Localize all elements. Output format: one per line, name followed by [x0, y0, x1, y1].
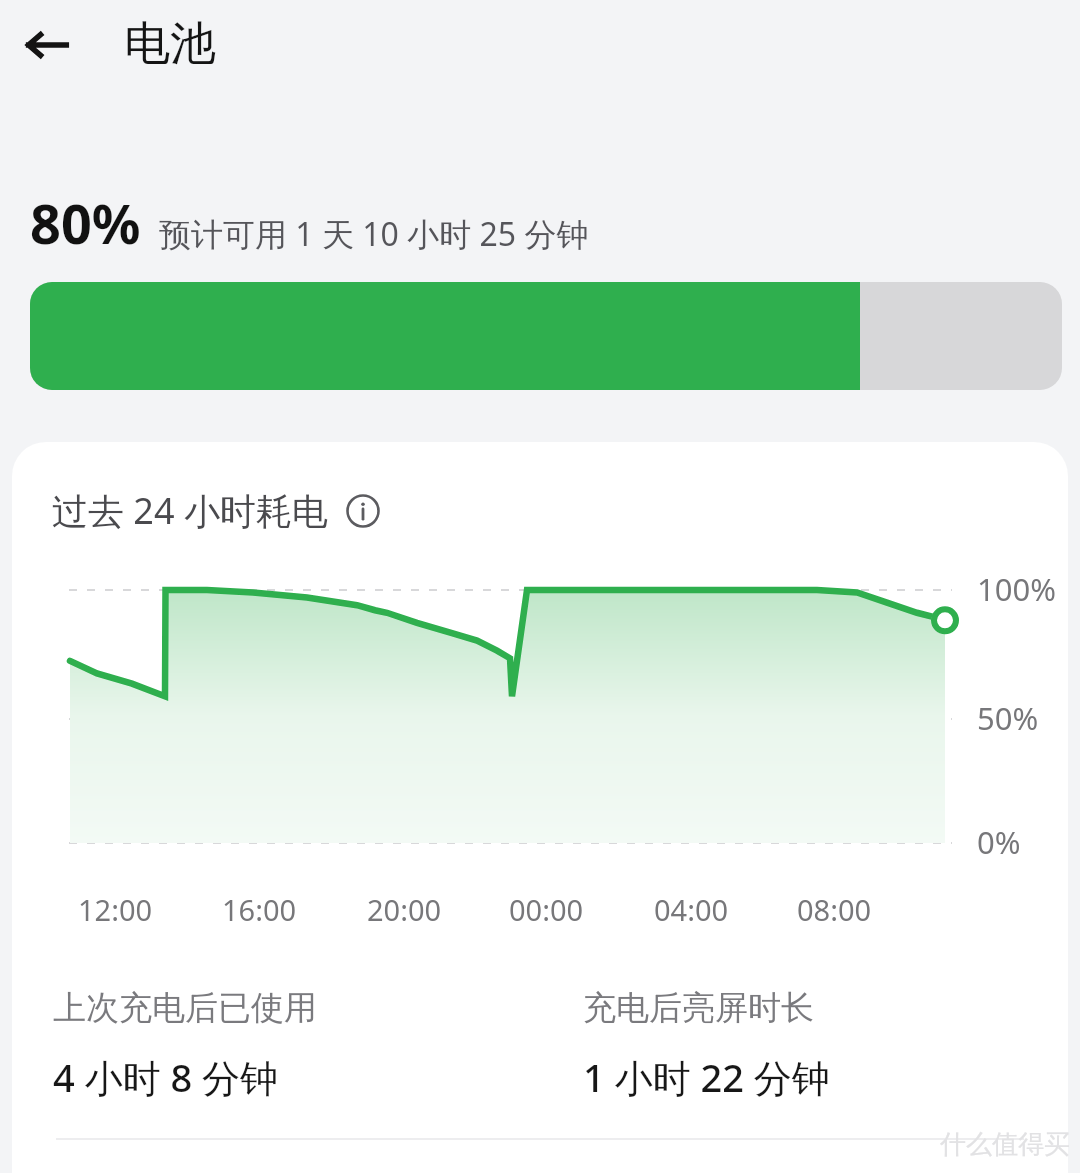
button[interactable] [30, 282, 1062, 390]
button[interactable]: Back [14, 12, 80, 78]
staticText: 08:00 [797, 890, 872, 929]
staticText: 0% [977, 821, 1021, 863]
staticText: 过去 24 小时耗电 [52, 486, 328, 535]
staticText: 上次充电后已使用 [53, 987, 317, 1029]
staticText: 16:00 [222, 890, 297, 929]
button[interactable]: 充电后亮屏时长 [583, 987, 1043, 1103]
staticText: 预计可用 1 天 10 小时 25 分钟 [159, 212, 589, 256]
staticText: 12:00 [78, 890, 153, 929]
staticText: 1 小时 22 分钟 [583, 1051, 830, 1103]
staticText: 20:00 [367, 890, 442, 929]
staticText: 04:00 [654, 890, 729, 929]
staticText: 4 小时 8 分钟 [53, 1051, 279, 1103]
staticText: 什么值得买 [940, 1128, 1070, 1161]
staticText: 00:00 [509, 890, 584, 929]
staticText: 充电后亮屏时长 [583, 987, 814, 1029]
staticText: 电池 [124, 15, 216, 73]
button[interactable]: 过去 24 小时耗电 [52, 486, 380, 535]
staticText: 100% [977, 568, 1056, 610]
staticText: 80% [30, 186, 141, 260]
staticText: 50% [977, 697, 1039, 739]
button[interactable]: 上次充电后已使用 [53, 987, 553, 1103]
